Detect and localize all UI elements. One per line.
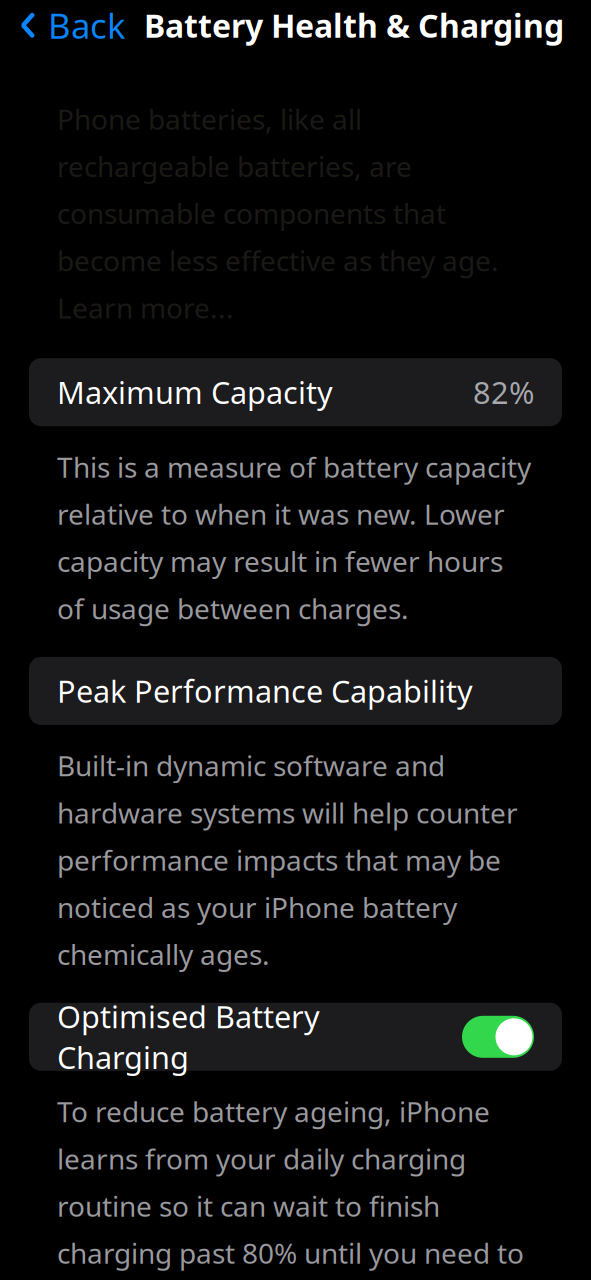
staticText: Optimised Battery Charging [57,996,320,1077]
staticText: Battery Health & Charging [144,4,564,46]
button[interactable]: Back [0,0,126,56]
staticText: 82% [473,372,534,412]
staticText: Built-in dynamic software and hardware s… [57,747,518,973]
staticText: Phone batteries, like all rechargeable b… [57,100,499,326]
staticText: To reduce battery ageing, iPhone learns … [57,1093,524,1280]
button[interactable]: Optimised Battery Charging [29,1003,562,1071]
button[interactable]: Peak Performance Capability [29,657,562,725]
staticText: This is a measure of battery capacity re… [57,448,531,627]
button[interactable]: Maximum Capacity [29,358,562,426]
staticText: Peak Performance Capability [57,670,473,711]
staticText: Maximum Capacity [57,372,333,412]
staticText: Back [48,2,126,48]
